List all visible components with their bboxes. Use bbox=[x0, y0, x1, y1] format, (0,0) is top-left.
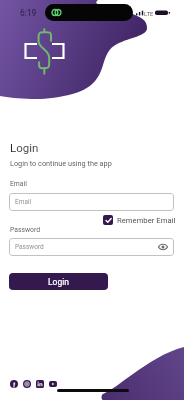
staticText: Login bbox=[10, 141, 39, 154]
staticText: 6:19 bbox=[20, 8, 37, 18]
staticText: Login bbox=[48, 277, 69, 287]
staticText: Email bbox=[15, 198, 32, 206]
button[interactable]: Password bbox=[9, 238, 174, 256]
button[interactable]: Instagram bbox=[23, 380, 31, 388]
button[interactable]: Email bbox=[9, 193, 174, 211]
staticText: LTE bbox=[144, 10, 154, 17]
staticText: Login to continue using the app bbox=[10, 159, 112, 168]
button[interactable]: Login bbox=[9, 273, 108, 290]
staticText: Email bbox=[10, 180, 27, 188]
button[interactable]: Remember Email bbox=[103, 214, 176, 226]
button[interactable]: YouTube bbox=[49, 380, 57, 388]
staticText: Password bbox=[15, 243, 44, 251]
staticText: Password bbox=[10, 226, 41, 234]
staticText: Remember Email bbox=[117, 216, 176, 225]
button[interactable]: Facebook bbox=[10, 380, 18, 388]
button[interactable]: Show password bbox=[158, 242, 168, 252]
button[interactable]: LinkedIn bbox=[36, 380, 44, 388]
